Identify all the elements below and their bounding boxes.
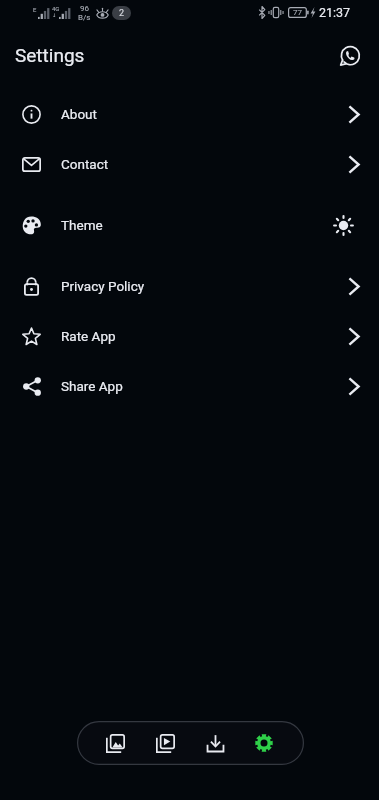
staticText: 77	[293, 8, 302, 17]
button[interactable]: Contact	[0, 139, 379, 189]
staticText: Contact	[61, 156, 109, 172]
staticText: E	[33, 6, 37, 12]
button[interactable]: Privacy Policy	[0, 261, 379, 311]
button[interactable]: Downloads	[193, 721, 237, 765]
button[interactable]: Videos	[143, 721, 187, 765]
button[interactable]: Photos	[93, 721, 137, 765]
staticText: Share App	[61, 378, 123, 394]
button[interactable]: Settings	[242, 721, 286, 765]
staticText: Privacy Policy	[61, 278, 145, 294]
staticText: 2	[119, 8, 125, 19]
staticText: Rate App	[61, 328, 116, 344]
button[interactable]: Toggle light theme	[323, 205, 363, 245]
staticText: ↓↑	[52, 12, 60, 18]
button[interactable]: About	[0, 89, 379, 139]
staticText: 4G	[52, 5, 60, 11]
staticText: Settings	[15, 44, 85, 66]
staticText: Theme	[61, 217, 103, 233]
staticText: About	[61, 106, 97, 122]
button[interactable]: Share App	[0, 361, 379, 411]
staticText: 21:37	[319, 5, 351, 20]
staticText: 96	[80, 4, 89, 13]
button[interactable]: WhatsApp	[331, 39, 365, 73]
button[interactable]: Theme	[0, 197, 379, 253]
button[interactable]: Rate App	[0, 311, 379, 361]
staticText: B/s	[78, 13, 91, 22]
